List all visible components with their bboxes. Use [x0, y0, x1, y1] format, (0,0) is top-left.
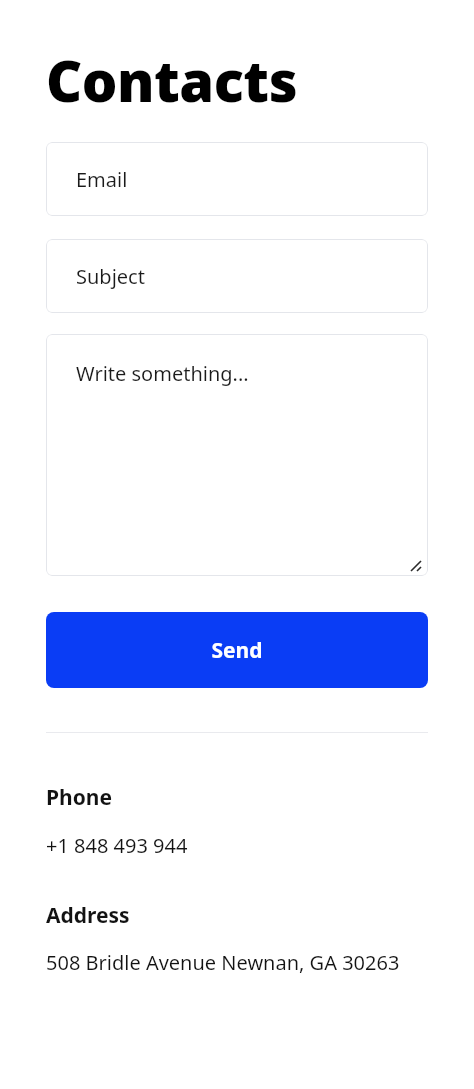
staticText: Contacts — [46, 42, 298, 118]
staticText: Send — [211, 636, 263, 665]
button[interactable]: Email — [46, 142, 428, 216]
staticText: 508 Bridle Avenue Newnan, GA 30263 — [46, 949, 428, 976]
button[interactable]: Write something... — [46, 334, 428, 576]
button[interactable]: Send — [46, 612, 428, 688]
staticText: Address — [46, 901, 130, 930]
button[interactable]: Subject — [46, 239, 428, 313]
staticText: +1 848 493 944 — [46, 832, 188, 859]
staticText: Email — [76, 166, 128, 193]
staticText: Write something... — [76, 360, 249, 387]
staticText: Subject — [76, 263, 145, 290]
staticText: Phone — [46, 783, 113, 812]
